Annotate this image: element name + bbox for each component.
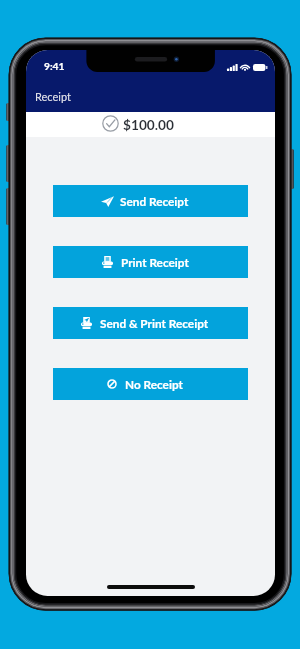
staticText: 9:41 (44, 60, 65, 72)
staticText: No Receipt (125, 377, 183, 391)
staticText: $100.00 (123, 116, 174, 132)
staticText: Print Receipt (121, 255, 189, 269)
button[interactable]: Send Receipt (53, 185, 248, 217)
button[interactable]: Print Receipt (53, 246, 248, 278)
staticText: Receipt (35, 90, 71, 103)
staticText: Send Receipt (120, 194, 189, 208)
button[interactable]: Send & Print Receipt (53, 307, 248, 339)
staticText: Send & Print Receipt (100, 316, 209, 330)
button[interactable]: No Receipt (53, 368, 248, 400)
